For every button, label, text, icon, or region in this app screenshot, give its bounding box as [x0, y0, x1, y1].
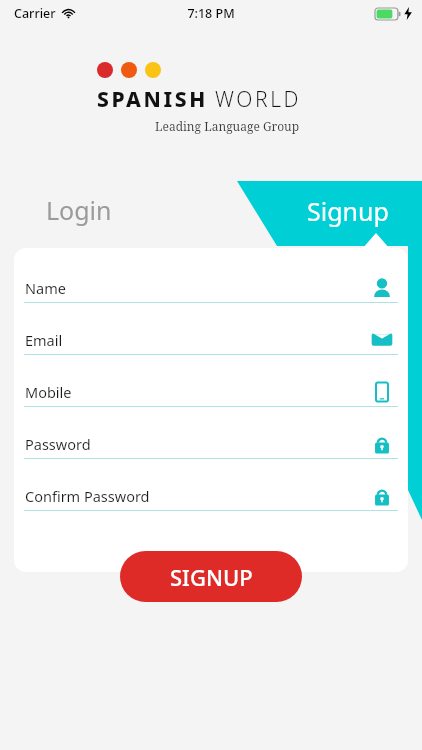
button[interactable]: Password — [14, 432, 408, 484]
other: Name — [370, 276, 394, 300]
button[interactable]: Mobile — [14, 380, 408, 432]
button[interactable]: Email — [14, 328, 408, 380]
other: Password — [370, 484, 394, 508]
staticText: Mobile — [25, 382, 72, 402]
other: Mobile — [370, 380, 394, 404]
button[interactable]: SIGNUP — [120, 551, 302, 602]
other: Email — [370, 328, 394, 352]
button[interactable]: Confirm Password — [14, 484, 408, 536]
button[interactable]: Signup — [288, 186, 408, 236]
staticText: WORLD — [215, 85, 302, 114]
staticText: Leading Language Group — [155, 118, 300, 134]
staticText: Signup — [307, 194, 389, 228]
button[interactable]: Name — [14, 276, 408, 328]
staticText: Carrier — [14, 5, 56, 22]
staticText: Confirm Password — [25, 486, 150, 506]
button[interactable]: Login — [24, 186, 134, 234]
staticText: Name — [25, 278, 66, 298]
other: Password — [370, 432, 394, 456]
staticText: Login — [46, 193, 112, 227]
staticText: SIGNUP — [170, 562, 253, 592]
staticText: SPANISH — [97, 85, 208, 114]
staticText: Email — [25, 330, 63, 350]
staticText: 7:18 PM — [187, 5, 235, 22]
staticText: Password — [25, 434, 91, 454]
